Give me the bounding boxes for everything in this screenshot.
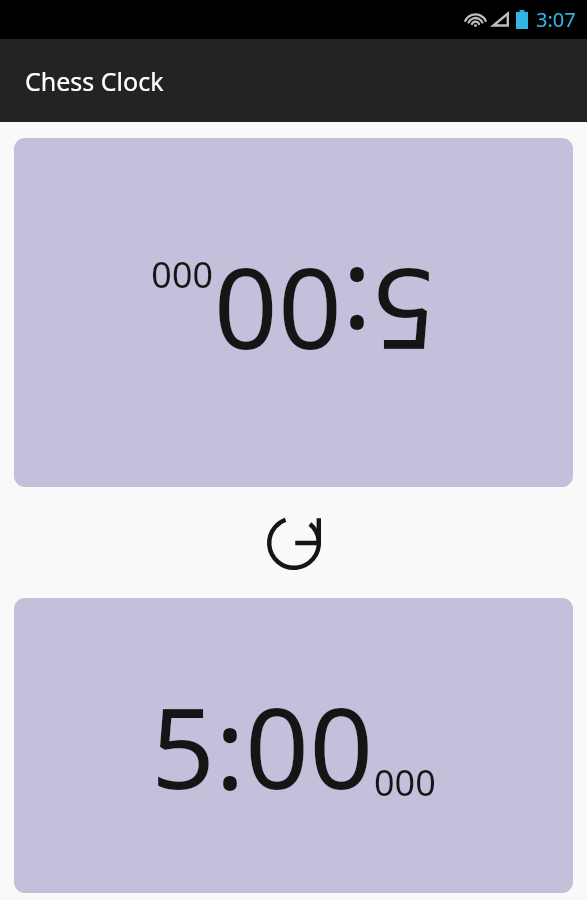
button[interactable]: Reset clocks [262,511,326,575]
staticText: Chess Clock [25,64,164,98]
staticText: 5:00 [151,669,374,822]
staticText: 5:00 [213,236,436,389]
staticText: 000 [151,251,213,300]
staticText: 3:07 [536,6,576,33]
button[interactable]: Bottom player clock 5:00 [14,598,573,893]
staticText: 000 [374,758,436,807]
button[interactable]: Top player clock 5:00 [14,138,573,487]
